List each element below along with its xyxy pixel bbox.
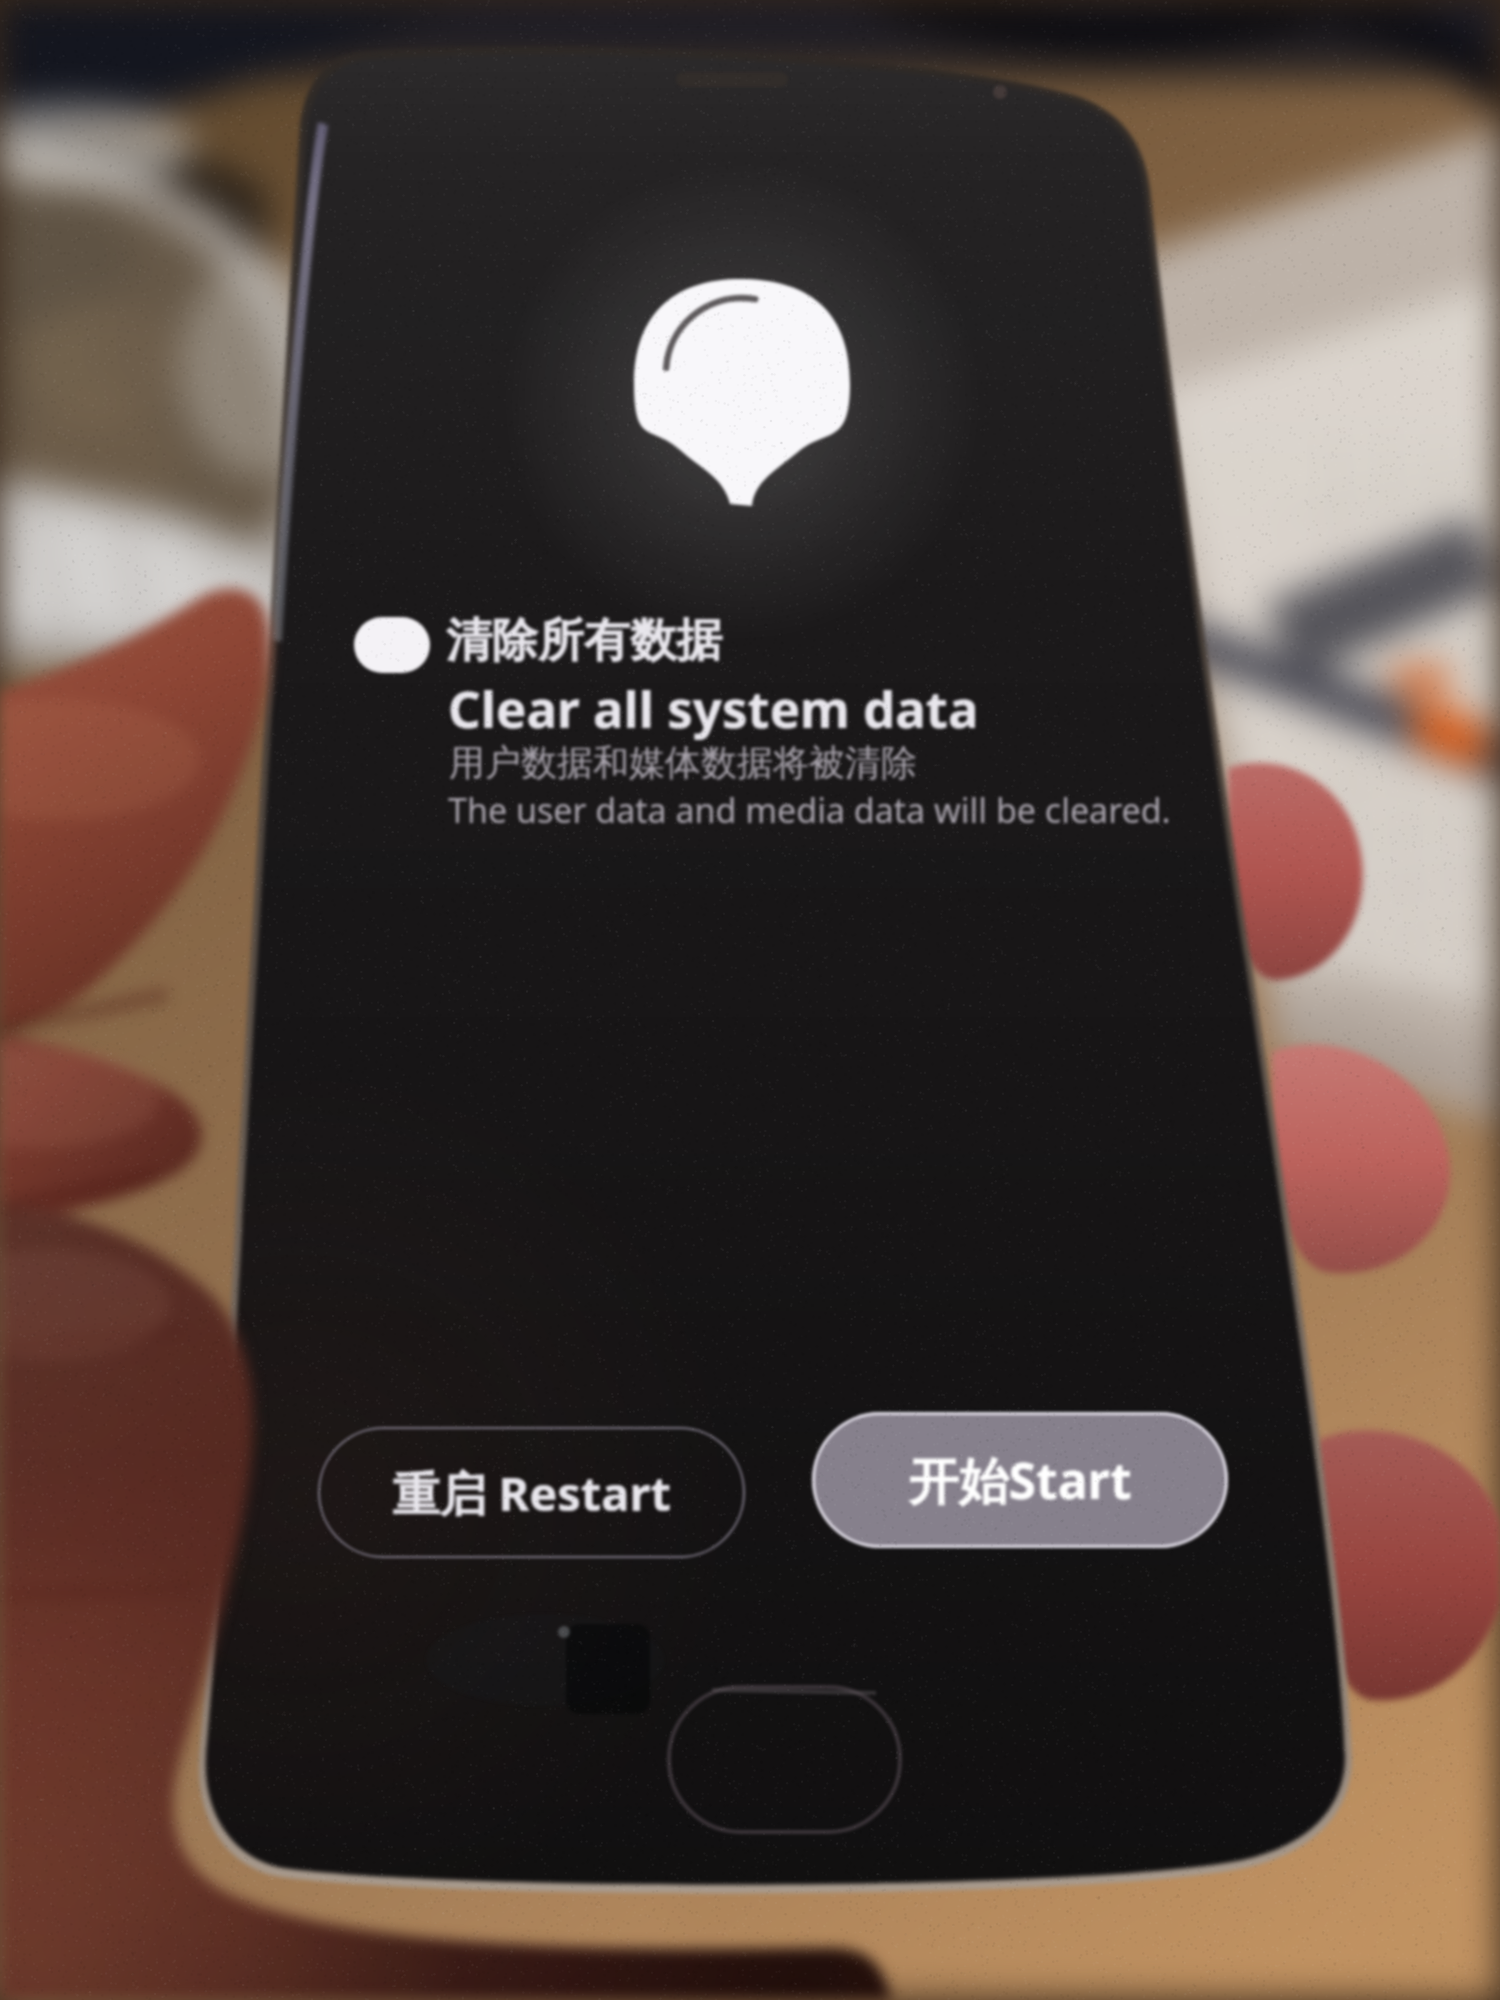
staticText: 用户数据和媒体数据将被清除 bbox=[449, 740, 917, 785]
staticText: The user data and media data will be cle… bbox=[448, 787, 1171, 833]
staticText: 重启 Restart bbox=[392, 1461, 671, 1525]
staticText: 开始Start bbox=[908, 1446, 1132, 1514]
button[interactable]: 重启 Restart bbox=[318, 1427, 745, 1558]
staticText: Clear all system data bbox=[448, 673, 979, 742]
button[interactable]: 开始Start bbox=[812, 1412, 1228, 1548]
staticText: 清除所有数据 bbox=[446, 612, 722, 670]
button[interactable]: Clear all system data, selected bbox=[344, 608, 1174, 848]
